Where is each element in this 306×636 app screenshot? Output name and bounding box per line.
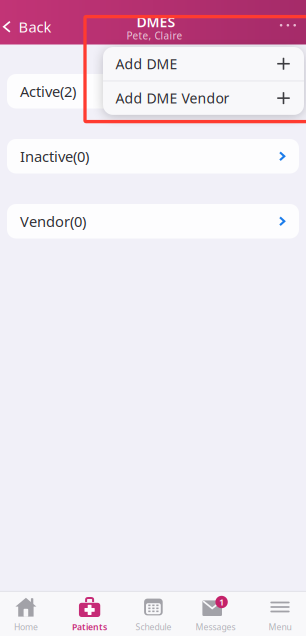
staticText: Inactive(0) — [20, 146, 89, 166]
button[interactable]: 1 — [184, 592, 245, 636]
button[interactable]: More options — [268, 0, 306, 44]
button[interactable]: Back — [0, 0, 59, 44]
staticText: Patients — [72, 621, 107, 633]
button[interactable]: Home — [0, 592, 61, 636]
staticText: Active(2) — [20, 81, 76, 101]
button[interactable]: Patients — [61, 592, 122, 636]
staticText: Menu — [268, 621, 291, 633]
button[interactable]: Vendor(0) — [7, 204, 299, 238]
button[interactable]: Active(2) — [7, 74, 299, 108]
staticText: DMES — [136, 12, 175, 31]
staticText: Home — [14, 621, 38, 633]
button[interactable]: Add DME — [103, 47, 304, 80]
staticText: Add DME — [115, 54, 177, 73]
staticText: Back — [18, 17, 51, 37]
staticText: 1 — [219, 596, 224, 608]
staticText: Messages — [195, 621, 235, 633]
button[interactable]: Menu — [245, 592, 306, 636]
staticText: Add DME Vendor — [115, 89, 229, 108]
button[interactable]: Schedule — [122, 592, 184, 636]
staticText: Pete, Claire — [126, 29, 182, 42]
button[interactable]: Inactive(0) — [7, 139, 299, 173]
staticText: Schedule — [135, 621, 171, 633]
button[interactable]: Add DME Vendor — [103, 81, 304, 115]
staticText: Vendor(0) — [20, 211, 86, 231]
